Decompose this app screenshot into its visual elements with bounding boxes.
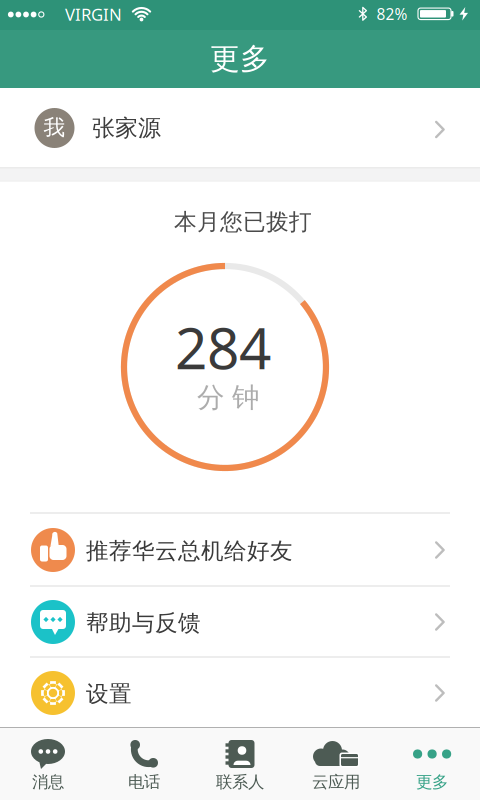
button[interactable]: 云应用 [288,728,384,800]
staticText: 82% [376,3,407,24]
staticText: 分 钟 [197,380,259,415]
button[interactable]: 推荐华云总机给好友 [0,514,480,585]
staticText: 联系人 [216,772,264,792]
staticText: 本月您已拨打 [174,208,312,236]
button[interactable]: 更多 [0,30,480,88]
button[interactable]: 联系人 [192,728,288,800]
staticText: 284 [175,309,271,386]
staticText: 设置 [86,680,132,708]
button[interactable]: 设置 [0,658,480,727]
button[interactable]: 消息 [0,728,96,800]
staticText: 更多 [416,772,448,792]
staticText: 消息 [32,772,64,792]
staticText: 更多 [210,40,270,78]
staticText: 推荐华云总机给好友 [86,537,293,565]
staticText: 我 [43,114,65,141]
staticText: VIRGIN [65,3,122,26]
button[interactable]: 电话 [96,728,192,800]
button[interactable]: 帮助与反馈 [0,587,480,656]
staticText: 云应用 [312,772,360,792]
button[interactable]: 更多 [384,728,480,800]
staticText: 电话 [128,772,160,792]
button[interactable]: 我 [0,88,480,168]
staticText: 帮助与反馈 [86,609,201,637]
staticText: 张家源 [92,114,161,142]
